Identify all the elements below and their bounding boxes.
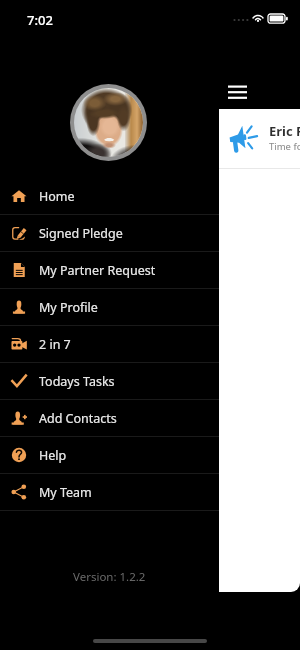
- button[interactable]: Profile photo: [70, 84, 147, 161]
- button[interactable]: Todays Tasks: [0, 363, 219, 399]
- staticText: Signed Pledge: [39, 225, 123, 242]
- staticText: Help: [39, 447, 67, 464]
- staticText: Add Contacts: [39, 410, 117, 427]
- staticText: 2 in 7: [39, 336, 71, 353]
- button[interactable]: Eric Frazier: [219, 109, 300, 168]
- button[interactable]: My Partner Request: [0, 252, 219, 288]
- staticText: Eric Frazier: [269, 122, 300, 140]
- button[interactable]: Home: [0, 178, 219, 214]
- button[interactable]: Help: [0, 437, 219, 473]
- button[interactable]: 2 in 7: [0, 326, 219, 362]
- staticText: My Profile: [39, 299, 98, 316]
- button[interactable]: My Profile: [0, 289, 219, 325]
- button[interactable]: Signed Pledge: [0, 215, 219, 251]
- staticText: Version: 1.2.2: [73, 569, 146, 585]
- staticText: Home: [39, 188, 75, 205]
- staticText: Todays Tasks: [39, 373, 115, 390]
- button[interactable]: Add Contacts: [0, 400, 219, 436]
- button[interactable]: Open navigation menu: [225, 79, 251, 105]
- staticText: 7:02: [27, 11, 53, 29]
- staticText: My Team: [39, 484, 92, 501]
- staticText: My Partner Request: [39, 262, 156, 279]
- button[interactable]: My Team: [0, 474, 219, 510]
- staticText: Time for your check-in: [269, 140, 300, 153]
